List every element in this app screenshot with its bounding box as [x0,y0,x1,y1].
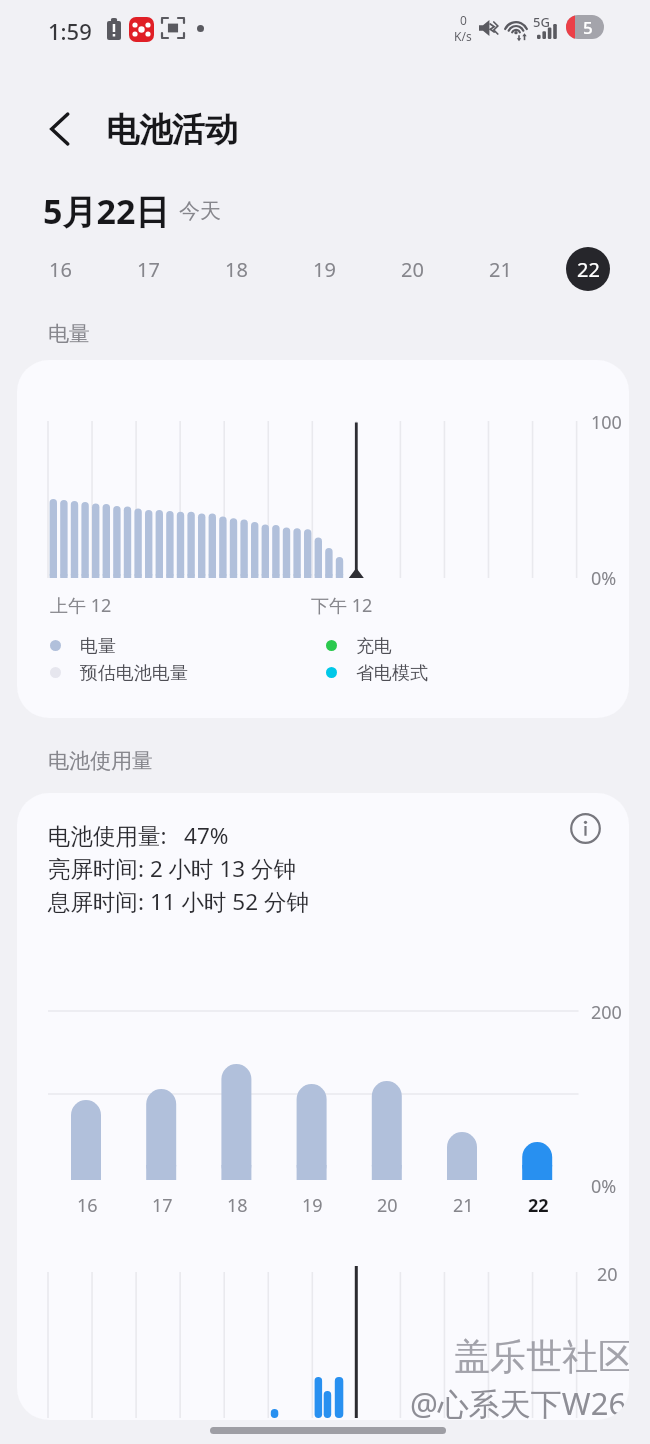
staticText: 17 [152,1193,173,1218]
staticText: 100 [591,410,622,435]
button[interactable]: 21 [478,247,522,291]
staticText: 18 [227,1193,248,1218]
staticText: 电量 [48,321,90,347]
button[interactable]: 17 [126,247,170,291]
staticText: 22 [528,1193,549,1218]
staticText: 0% [591,566,617,591]
staticText: 17 [137,256,160,283]
staticText: 电池活动 [106,109,238,151]
staticText: 电池使用量: 47% [48,820,229,851]
staticText: 省电模式 [356,662,428,685]
staticText: 20 [401,256,424,283]
staticText: 5月22日 [43,188,170,234]
staticText: 200 [591,1000,622,1025]
staticText: 20 [597,1262,618,1287]
staticText: 22 [577,256,600,283]
staticText: 19 [302,1193,323,1218]
staticText: 21 [453,1193,474,1218]
staticText: 电量 [80,635,116,658]
staticText: K/s [454,28,472,44]
staticText: 5 [583,16,593,39]
staticText: 0% [591,1174,617,1199]
button[interactable]: 18 [214,247,258,291]
staticText: 今天 [179,198,221,224]
staticText: 电池使用量 [48,748,153,774]
staticText: 5G [533,13,550,31]
staticText: 16 [77,1193,98,1218]
staticText: 上午 12 [50,593,112,618]
staticText: 21 [489,256,512,283]
staticText: 19 [313,256,336,283]
button[interactable]: 16 [38,247,82,291]
staticText: 16 [49,256,72,283]
staticText: 充电 [356,635,392,658]
staticText: 预估电池电量 [80,662,188,685]
button[interactable]: 22 [566,247,610,291]
staticText: 息屏时间: 11 小时 52 分钟 [48,886,309,917]
staticText: @心系天下W26 [410,1382,627,1420]
button[interactable]: 20 [390,247,434,291]
staticText: 18 [225,256,248,283]
staticText: 1:59 [48,16,92,46]
button[interactable]: 信息 [563,806,608,851]
staticText: 0 [460,12,467,28]
staticText: 20 [377,1193,398,1218]
button[interactable]: 返回 [36,105,84,153]
staticText: 亮屏时间: 2 小时 13 分钟 [48,853,297,884]
button[interactable]: 19 [302,247,346,291]
staticText: 下午 12 [311,593,373,618]
staticText: 盖乐世社区 [454,1334,629,1379]
